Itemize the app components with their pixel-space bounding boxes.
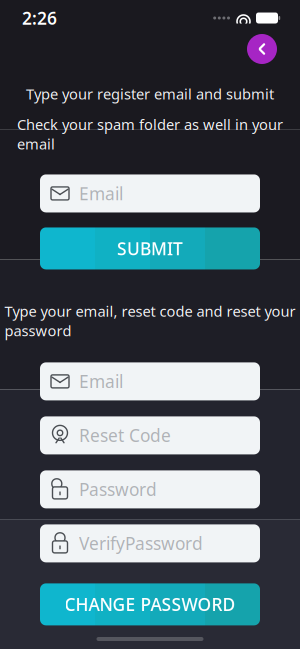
staticText: Email [79,370,123,393]
button[interactable]: CHANGE PASSWORD [40,583,260,625]
staticText: Type your email, reset code and reset yo… [4,301,295,340]
staticText: 2:26 [22,6,57,29]
staticText: Reset Code [79,424,171,447]
staticText: Type your register email and submit [26,84,274,103]
staticText: SUBMIT [117,237,183,260]
staticText: VerifyPassword [79,532,203,555]
button[interactable]: Back [245,32,279,66]
staticText: Password [79,478,157,501]
button[interactable]: SUBMIT [40,227,260,269]
staticText: Email [79,182,123,205]
staticText: Check your spam folder as well in your e… [17,114,283,153]
staticText: CHANGE PASSWORD [64,593,235,616]
